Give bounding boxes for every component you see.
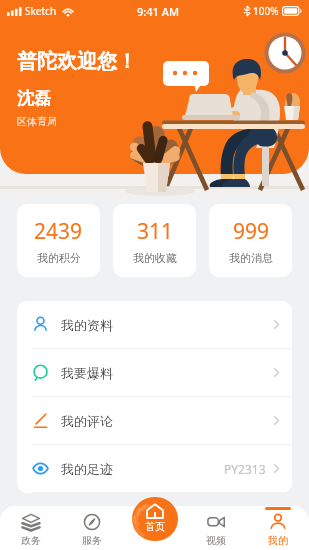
staticText: 999 xyxy=(233,217,270,246)
button[interactable]: 政务 xyxy=(0,506,61,550)
button[interactable]: 我的足迹 xyxy=(17,445,292,492)
button[interactable]: 视频 xyxy=(185,506,247,550)
staticText: 区体育局 xyxy=(17,115,57,128)
staticText: PY2313 xyxy=(224,461,266,477)
staticText: 我的积分 xyxy=(37,251,81,265)
staticText: 我的评论 xyxy=(61,413,113,429)
button[interactable]: 我的 xyxy=(247,506,309,550)
button[interactable]: 311 xyxy=(113,204,196,277)
staticText: 首页 xyxy=(145,520,165,533)
staticText: 服务 xyxy=(82,534,102,547)
staticText: 311 xyxy=(137,217,174,246)
staticText: 普陀欢迎您！ xyxy=(17,49,137,74)
staticText: Sketch xyxy=(25,4,57,18)
staticText: 9:41 AM xyxy=(137,4,180,19)
staticText: 2439 xyxy=(34,217,83,246)
staticText: 我的足迹 xyxy=(61,461,113,477)
button[interactable]: 我的资料 xyxy=(17,301,292,348)
staticText: 我的资料 xyxy=(61,317,113,333)
button[interactable]: 我要爆料 xyxy=(17,349,292,396)
button[interactable]: 2439 xyxy=(17,204,100,277)
button[interactable]: 我的评论 xyxy=(17,397,292,444)
button[interactable]: 服务 xyxy=(61,506,123,550)
staticText: 我的收藏 xyxy=(133,251,177,265)
button[interactable]: 首页 xyxy=(132,497,178,541)
staticText: 视频 xyxy=(206,534,226,547)
staticText: 我要爆料 xyxy=(61,365,113,381)
staticText: 我的消息 xyxy=(229,251,273,265)
staticText: 我的 xyxy=(268,534,288,547)
staticText: 沈磊 xyxy=(17,88,51,109)
staticText: 政务 xyxy=(21,534,41,547)
button[interactable]: 999 xyxy=(209,204,292,277)
staticText: 100% xyxy=(253,4,279,18)
